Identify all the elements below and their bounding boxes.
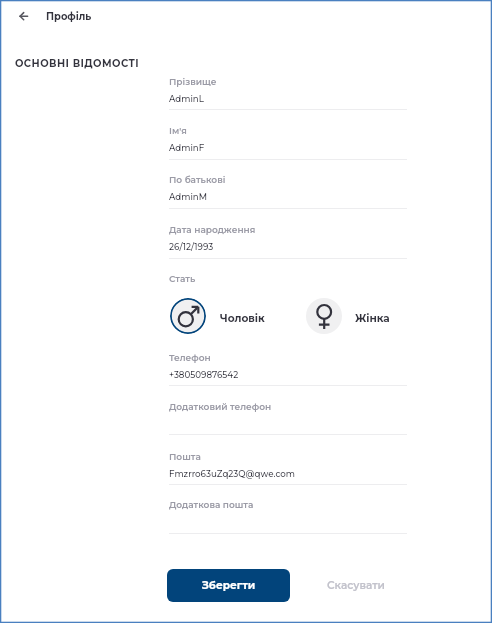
- staticText: Ім'я: [169, 125, 187, 136]
- staticText: Профіль: [46, 10, 92, 22]
- staticText: Стать: [169, 273, 196, 284]
- button[interactable]: Чоловік: [170, 298, 206, 334]
- staticText: Дата народження: [169, 224, 256, 235]
- staticText: Пошта: [169, 451, 201, 462]
- staticText: Скасувати: [327, 579, 385, 592]
- staticText: Fmzrro63uZq23Q@qwe.com: [169, 469, 295, 480]
- staticText: ОСНОВНІ ВІДОМОСТІ: [15, 57, 140, 69]
- staticText: Жінка: [355, 312, 390, 325]
- button[interactable]: Зберегти: [167, 569, 290, 602]
- staticText: Зберегти: [202, 579, 256, 592]
- staticText: +380509876542: [169, 370, 239, 381]
- staticText: AdminL: [169, 94, 204, 105]
- staticText: По батькові: [169, 174, 226, 185]
- staticText: Додаткова пошта: [169, 499, 254, 510]
- staticText: 26/12/1993: [169, 242, 214, 253]
- button[interactable]: Back: [13, 5, 35, 27]
- staticText: Телефон: [169, 352, 211, 363]
- button[interactable]: Жінка: [306, 298, 342, 334]
- staticText: AdminF: [169, 143, 205, 154]
- button[interactable]: Скасувати: [313, 569, 398, 602]
- staticText: Чоловік: [220, 312, 265, 325]
- staticText: Додатковий телефон: [169, 401, 272, 412]
- staticText: AdminM: [169, 192, 208, 203]
- staticText: Прізвище: [169, 76, 217, 87]
